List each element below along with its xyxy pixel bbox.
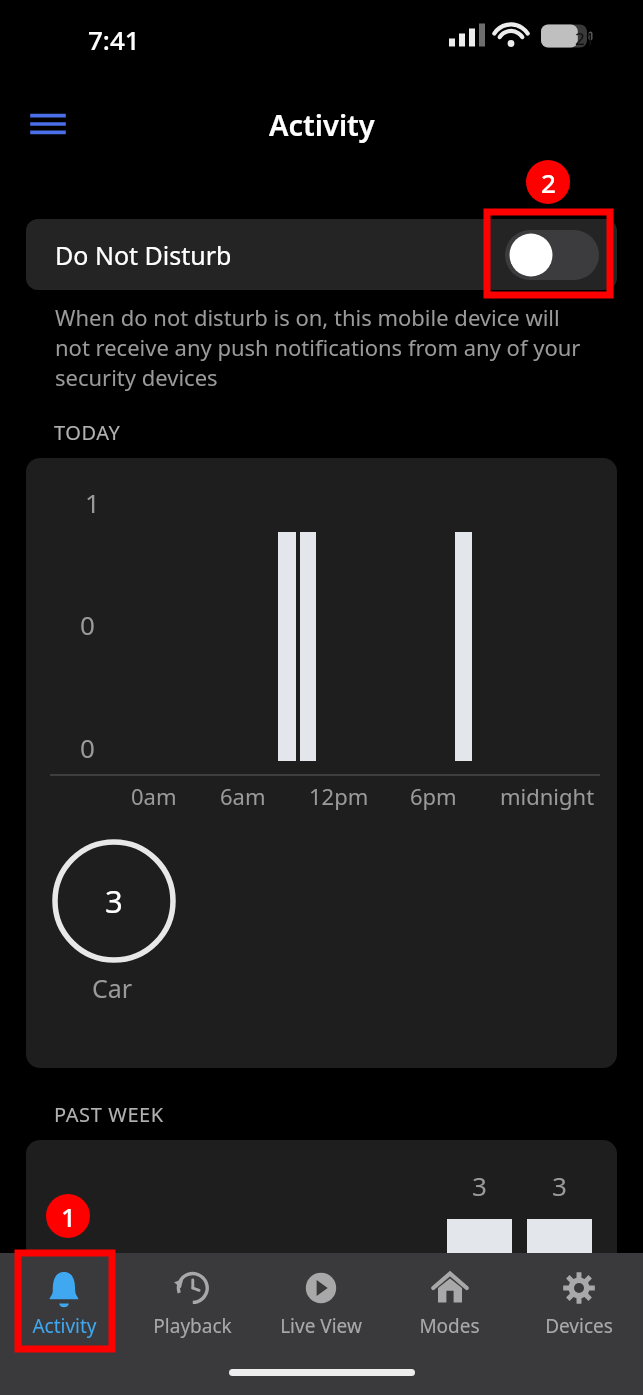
staticText: TODAY [54,419,121,446]
button[interactable]: Devices [514,1253,643,1353]
staticText: 1 [85,485,100,520]
staticText: 0 [80,730,95,765]
staticText: 21 [575,27,595,50]
staticText: 1 [61,1199,76,1234]
staticText: 0 [80,607,95,642]
staticText: 3 [552,1168,567,1203]
button[interactable]: Do Not Disturb toggle [505,230,599,280]
staticText: 7:41 [88,22,140,57]
button[interactable]: 3 [26,1140,617,1395]
staticText: Live View [280,1313,362,1339]
button[interactable]: 1 [26,458,617,1068]
staticText: When do not disturb is on, this mobile d… [55,302,597,392]
button[interactable]: Menu [22,98,74,150]
staticText: PAST WEEK [54,1101,164,1128]
staticText: Modes [419,1313,480,1339]
staticText: 6pm [410,781,457,811]
staticText: Car [92,971,133,1005]
staticText: Do Not Disturb [55,238,505,272]
staticText: Activity [269,105,375,144]
button[interactable]: Do Not Disturb [26,219,617,290]
staticText: 3 [105,880,123,922]
staticText: 2 [541,165,556,200]
staticText: Activity [32,1313,97,1339]
staticText: 6am [220,781,266,811]
button[interactable]: Car events: 3 [54,841,174,961]
staticText: midnight [500,781,595,811]
staticText: 3 [472,1168,487,1203]
staticText: Playback [153,1313,232,1339]
button[interactable]: Live View [256,1253,385,1353]
staticText: 0am [131,781,177,811]
button[interactable]: Activity [0,1253,128,1353]
staticText: 12pm [309,781,369,811]
staticText: Devices [545,1313,613,1339]
button[interactable]: Playback [128,1253,256,1353]
button[interactable]: Modes [385,1253,514,1353]
